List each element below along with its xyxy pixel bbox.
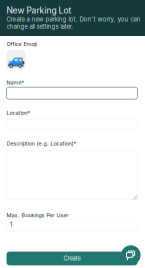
staticText: Create	[63, 255, 80, 262]
staticText: Max. Bookings Per User	[6, 212, 68, 219]
staticText: 🚙	[7, 51, 25, 68]
button[interactable]: Create	[6, 252, 137, 265]
staticText: 1	[10, 221, 12, 228]
staticText: Description (e.g. Location)*	[6, 140, 76, 147]
staticText: New Parking Lot	[6, 6, 71, 15]
button[interactable]: Max bookings per user	[6, 219, 137, 230]
button[interactable]: Choose office emoji	[6, 50, 25, 69]
button[interactable]: Name	[6, 87, 137, 99]
staticText: Create a new parking lot. Don't worry, y…	[6, 16, 140, 30]
staticText: Office Emoji	[6, 41, 36, 47]
button[interactable]: Open chat	[121, 245, 141, 265]
staticText: Name*	[6, 79, 24, 86]
staticText: Location*	[6, 109, 30, 116]
